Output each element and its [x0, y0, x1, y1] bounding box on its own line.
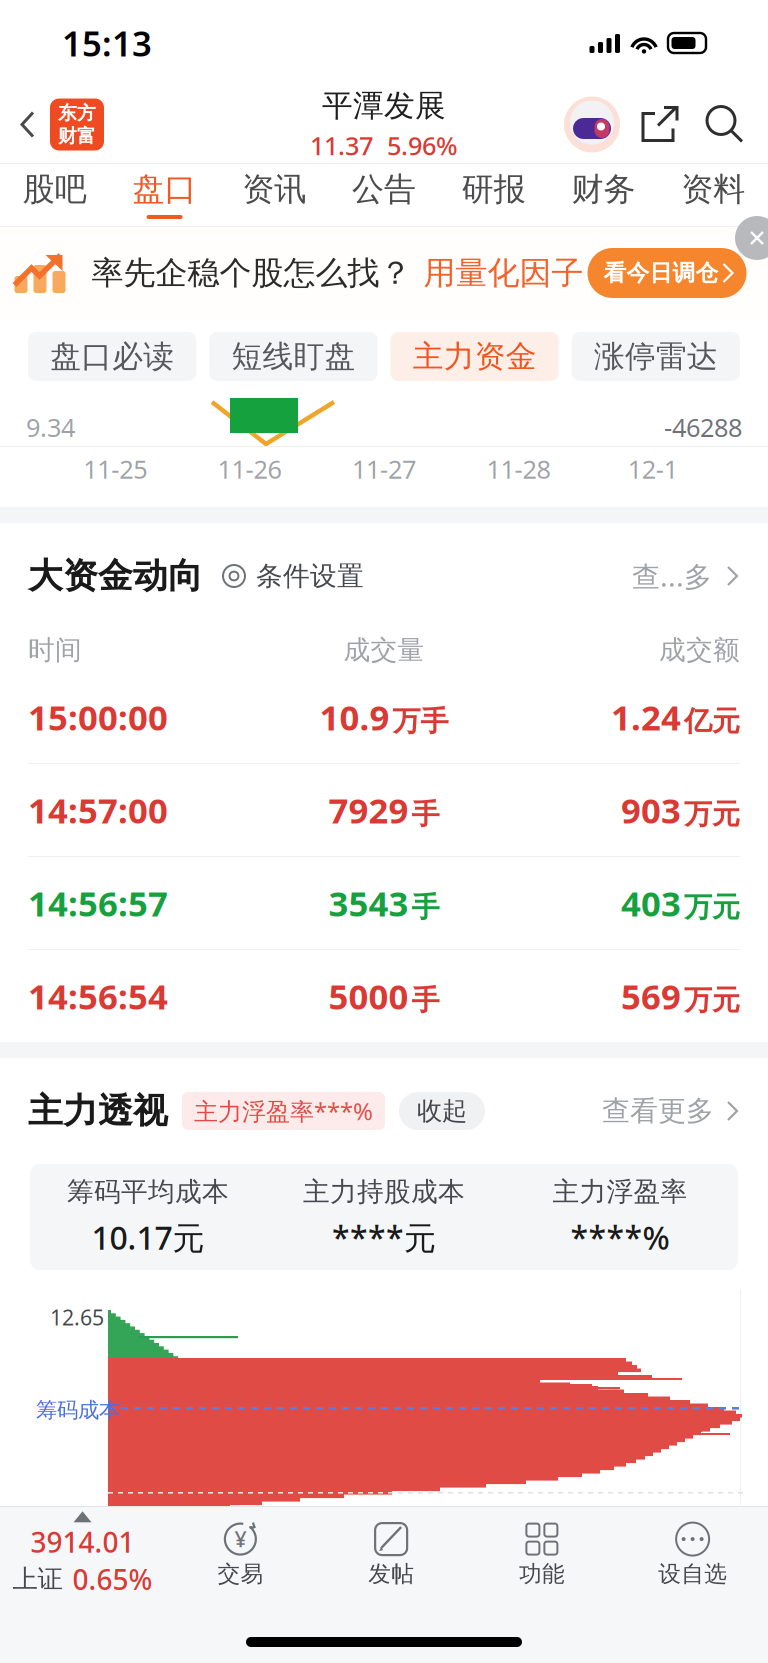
staticText: ****元: [332, 1216, 436, 1259]
staticText: 5.96%: [387, 128, 458, 162]
button[interactable]: 股吧: [0, 164, 110, 226]
button[interactable]: 设自选: [617, 1520, 768, 1588]
staticText: 手: [411, 890, 439, 924]
staticText: ****%: [570, 1216, 669, 1259]
staticText: 11-25: [83, 452, 147, 486]
staticText: 主力资金: [413, 338, 537, 375]
button[interactable]: Close: [722, 227, 768, 273]
staticText: 交易: [217, 1560, 263, 1588]
button[interactable]: 查...多: [632, 557, 740, 595]
button[interactable]: 功能: [466, 1520, 617, 1588]
staticText: 主力透视: [28, 1090, 168, 1132]
staticText: 盘口: [133, 170, 197, 209]
staticText: 11.37: [310, 128, 373, 162]
staticText: 东方: [58, 102, 96, 124]
staticText: 14:57:00: [28, 787, 168, 833]
staticText: 成交量: [343, 634, 424, 666]
staticText: 公告: [352, 170, 416, 209]
staticText: 3543: [328, 880, 408, 926]
staticText: 主力持股成本: [303, 1175, 465, 1208]
staticText: 股吧: [23, 170, 87, 209]
staticText: 万元: [684, 797, 740, 831]
button[interactable]: 查看更多: [602, 1094, 740, 1128]
staticText: 查看更多: [602, 1094, 714, 1128]
staticText: 资讯: [242, 170, 306, 209]
staticText: 筹码成本: [36, 1397, 120, 1423]
staticText: 收起: [417, 1095, 467, 1126]
staticText: 资料: [681, 170, 745, 209]
button[interactable]: 条件设置: [203, 560, 364, 592]
button[interactable]: 资讯: [219, 164, 329, 226]
button[interactable]: 财务: [549, 164, 658, 226]
staticText: 1.24: [611, 694, 681, 740]
button[interactable]: 盘口: [110, 164, 219, 226]
staticText: 569: [621, 973, 681, 1019]
staticText: 查...多: [632, 557, 712, 595]
button[interactable]: ¥: [165, 1520, 316, 1588]
staticText: 14:56:54: [28, 973, 168, 1019]
button[interactable]: 发帖: [316, 1520, 467, 1588]
staticText: 上证: [12, 1563, 62, 1595]
staticText: 7929: [328, 787, 408, 833]
staticText: 发帖: [368, 1560, 414, 1588]
staticText: 3914.01: [30, 1523, 134, 1560]
staticText: 14:56:57: [28, 880, 168, 926]
button[interactable]: AI assistant: [562, 94, 628, 154]
staticText: 万手: [392, 704, 448, 738]
button[interactable]: 收起: [399, 1092, 485, 1130]
staticText: 9.34: [26, 410, 75, 444]
button[interactable]: 研报: [439, 164, 549, 226]
button[interactable]: 资料: [658, 164, 768, 226]
staticText: 条件设置: [256, 560, 364, 592]
staticText: ¥: [234, 1525, 246, 1553]
button[interactable]: 3914.01: [0, 1510, 165, 1598]
staticText: 903: [621, 787, 681, 833]
staticText: 研报: [462, 170, 526, 209]
staticText: 短线盯盘: [231, 338, 355, 375]
staticText: 亿元: [684, 704, 740, 738]
button[interactable]: 涨停雷达: [572, 332, 740, 381]
staticText: 11-28: [486, 452, 550, 486]
button[interactable]: Share: [628, 103, 692, 145]
button[interactable]: 短线盯盘: [209, 332, 377, 381]
staticText: 5000: [328, 973, 408, 1019]
staticText: 12.65: [50, 1303, 104, 1331]
staticText: 11-27: [352, 452, 416, 486]
staticText: 万元: [684, 983, 740, 1017]
staticText: 平潭发展: [322, 87, 446, 124]
staticText: 率先企稳个股怎么找？: [91, 253, 411, 293]
staticText: 主力浮盈率: [552, 1175, 687, 1208]
staticText: 0.65%: [72, 1560, 152, 1598]
staticText: 万元: [684, 890, 740, 924]
staticText: -46288: [664, 410, 742, 444]
button[interactable]: 主力资金: [390, 332, 559, 381]
button[interactable]: 公告: [329, 164, 439, 226]
staticText: 财富: [58, 124, 96, 147]
staticText: 11-26: [218, 452, 282, 486]
staticText: 时间: [28, 634, 82, 666]
staticText: 10.17元: [91, 1216, 204, 1259]
staticText: 手: [411, 797, 439, 831]
staticText: 功能: [519, 1560, 565, 1588]
staticText: 财务: [571, 170, 635, 209]
staticText: 用量化因子: [423, 253, 583, 293]
button[interactable]: Search: [692, 103, 768, 145]
staticText: 大资金动向: [28, 555, 203, 597]
staticText: 看今日调仓: [603, 259, 718, 287]
staticText: 涨停雷达: [594, 338, 718, 375]
staticText: 15:00:00: [28, 694, 168, 740]
staticText: 手: [411, 983, 439, 1017]
staticText: 设自选: [658, 1560, 727, 1588]
button[interactable]: 率先企稳个股怎么找？: [0, 227, 768, 319]
staticText: 盘口必读: [50, 338, 174, 375]
staticText: 10.9: [319, 694, 389, 740]
staticText: 主力浮盈率***%: [194, 1095, 373, 1127]
staticText: 15:13: [62, 20, 152, 66]
staticText: 403: [621, 880, 681, 926]
staticText: 12-1: [628, 452, 678, 486]
button[interactable]: 东方: [0, 86, 112, 162]
staticText: 成交额: [659, 634, 740, 666]
button[interactable]: 盘口必读: [28, 332, 196, 381]
staticText: 筹码平均成本: [67, 1175, 229, 1208]
